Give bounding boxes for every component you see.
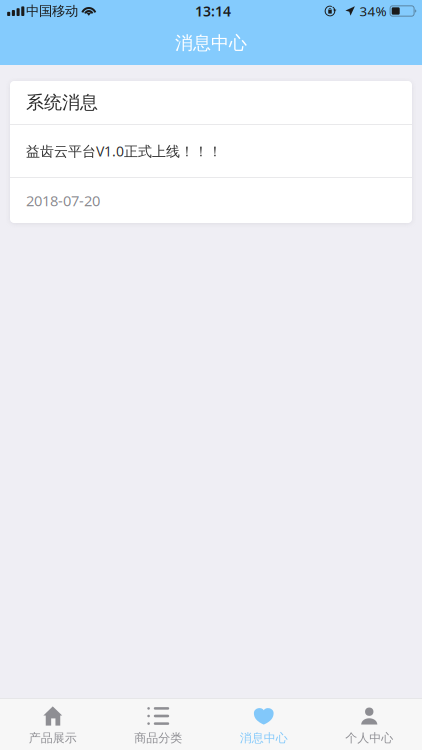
button[interactable]: 个人中心	[316, 698, 422, 750]
button[interactable]: 系统消息	[10, 81, 412, 223]
staticText: 益齿云平台V1.0正式上线！！！	[26, 142, 222, 160]
staticText: 34%	[360, 2, 387, 20]
staticText: 商品分类	[134, 731, 182, 745]
staticText: 2018-07-20	[26, 191, 100, 210]
staticText: 系统消息	[26, 91, 98, 113]
staticText: 消息中心	[175, 32, 247, 54]
button[interactable]: 商品分类	[105, 698, 211, 750]
staticText: 13:14	[195, 2, 231, 20]
staticText: 中国移动	[26, 3, 78, 19]
staticText: 个人中心	[345, 731, 393, 745]
button[interactable]: 消息中心	[211, 698, 316, 750]
staticText: 产品展示	[29, 731, 77, 745]
staticText: 消息中心	[240, 731, 288, 745]
button[interactable]: 消息中心	[0, 21, 422, 64]
button[interactable]: 产品展示	[0, 698, 105, 750]
